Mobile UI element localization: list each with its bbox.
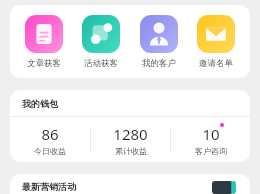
button[interactable]: 10 (171, 117, 250, 162)
staticText: 活动获客 (84, 58, 118, 69)
button[interactable]: 我的钱包 (10, 90, 250, 116)
staticText: 10 (202, 124, 220, 144)
staticText: 我的钱包 (22, 98, 58, 109)
staticText: 邀请名单 (199, 58, 233, 69)
staticText: 客户咨询 (195, 146, 227, 156)
other: 我的客户 (140, 15, 178, 53)
staticText: 86 (41, 124, 59, 144)
other: 活动获客 (82, 15, 120, 53)
button[interactable]: 邀请名单 (188, 13, 244, 71)
button[interactable]: 86 (10, 117, 90, 162)
staticText: 最新营销活动 (22, 181, 76, 192)
staticText: 今日收益 (34, 146, 66, 156)
staticText: 1280 (113, 124, 148, 144)
button[interactable]: 1280 (91, 117, 170, 162)
other: 文章获客 (25, 15, 63, 53)
staticText: 累计收益 (115, 146, 147, 156)
button[interactable]: 文章获客 (16, 13, 72, 71)
button[interactable]: 活动获客 (73, 13, 129, 71)
staticText: 我的客户 (142, 58, 176, 69)
staticText: 文章获客 (27, 58, 61, 69)
button[interactable]: 最新营销活动 (10, 174, 250, 194)
button[interactable]: 我的客户 (131, 13, 187, 71)
other: 邀请名单 (197, 15, 235, 53)
